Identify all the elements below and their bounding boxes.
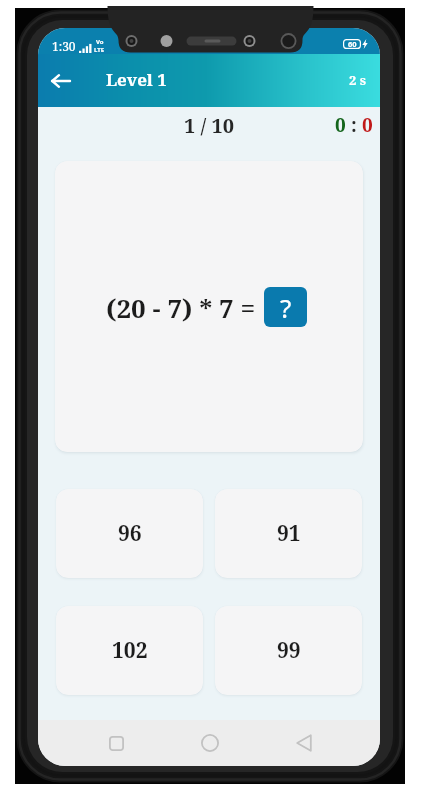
staticText: 0 <box>362 112 373 138</box>
staticText: LTE <box>94 46 105 54</box>
staticText: Vo <box>96 38 104 46</box>
staticText: 1 / 10 <box>184 112 235 139</box>
staticText: 96 <box>118 519 142 548</box>
staticText: 60 <box>348 39 357 49</box>
staticText: (20 - 7) * 7 = <box>106 290 256 325</box>
button[interactable]: 99 <box>215 606 362 695</box>
button[interactable]: Back <box>43 63 79 99</box>
staticText: 1:30 <box>52 38 76 54</box>
button[interactable]: Home <box>188 721 232 765</box>
button[interactable]: Back <box>282 721 326 765</box>
button[interactable]: 102 <box>56 606 203 695</box>
button[interactable]: ? <box>264 287 307 327</box>
staticText: Level 1 <box>106 68 167 91</box>
staticText: : <box>346 112 362 138</box>
button[interactable]: 96 <box>56 489 203 578</box>
staticText: 99 <box>277 636 301 665</box>
staticText: 2 s <box>349 71 366 89</box>
button[interactable]: Recent apps <box>94 721 138 765</box>
staticText: 102 <box>112 636 148 665</box>
staticText: 0 <box>335 112 346 138</box>
staticText: ? <box>280 290 292 325</box>
button[interactable]: 91 <box>215 489 362 578</box>
staticText: 91 <box>277 519 301 548</box>
